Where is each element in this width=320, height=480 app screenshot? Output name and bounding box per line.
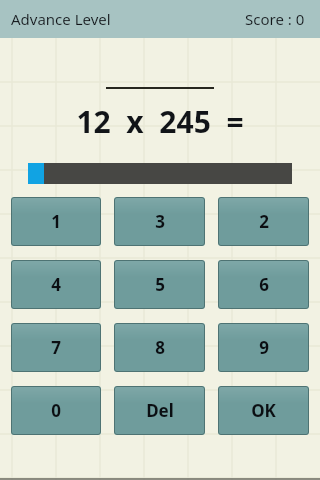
staticText: 6 xyxy=(259,273,269,296)
staticText: Del xyxy=(146,399,174,422)
staticText: Advance Level xyxy=(11,9,111,29)
staticText: Score : 0 xyxy=(245,9,305,29)
staticText: 5 xyxy=(155,273,165,296)
button[interactable]: 8 xyxy=(114,323,205,372)
staticText: 9 xyxy=(259,336,269,359)
button[interactable]: 0 xyxy=(11,386,101,435)
staticText: 8 xyxy=(155,336,165,359)
button[interactable]: 1 xyxy=(11,197,101,246)
button[interactable]: 5 xyxy=(114,260,205,309)
button[interactable]: 9 xyxy=(218,323,309,372)
staticText: 4 xyxy=(51,273,61,296)
staticText: 1 xyxy=(51,210,61,233)
button[interactable]: OK xyxy=(218,386,309,435)
staticText: 7 xyxy=(51,336,61,359)
staticText: OK xyxy=(251,399,276,422)
staticText: 12 x 245 = xyxy=(0,101,320,142)
button[interactable]: 3 xyxy=(114,197,205,246)
button[interactable]: 7 xyxy=(11,323,101,372)
staticText: 0 xyxy=(51,399,61,422)
staticText: 3 xyxy=(155,210,165,233)
button[interactable]: 6 xyxy=(218,260,309,309)
button[interactable]: 4 xyxy=(11,260,101,309)
staticText: 2 xyxy=(259,210,269,233)
button[interactable]: Del xyxy=(114,386,205,435)
button[interactable]: 2 xyxy=(218,197,309,246)
